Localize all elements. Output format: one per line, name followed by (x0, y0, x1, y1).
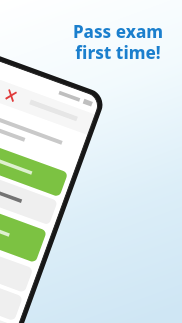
staticText: Pass exam first time! (62, 20, 174, 64)
button[interactable]: Pass exam first time! (62, 20, 174, 64)
